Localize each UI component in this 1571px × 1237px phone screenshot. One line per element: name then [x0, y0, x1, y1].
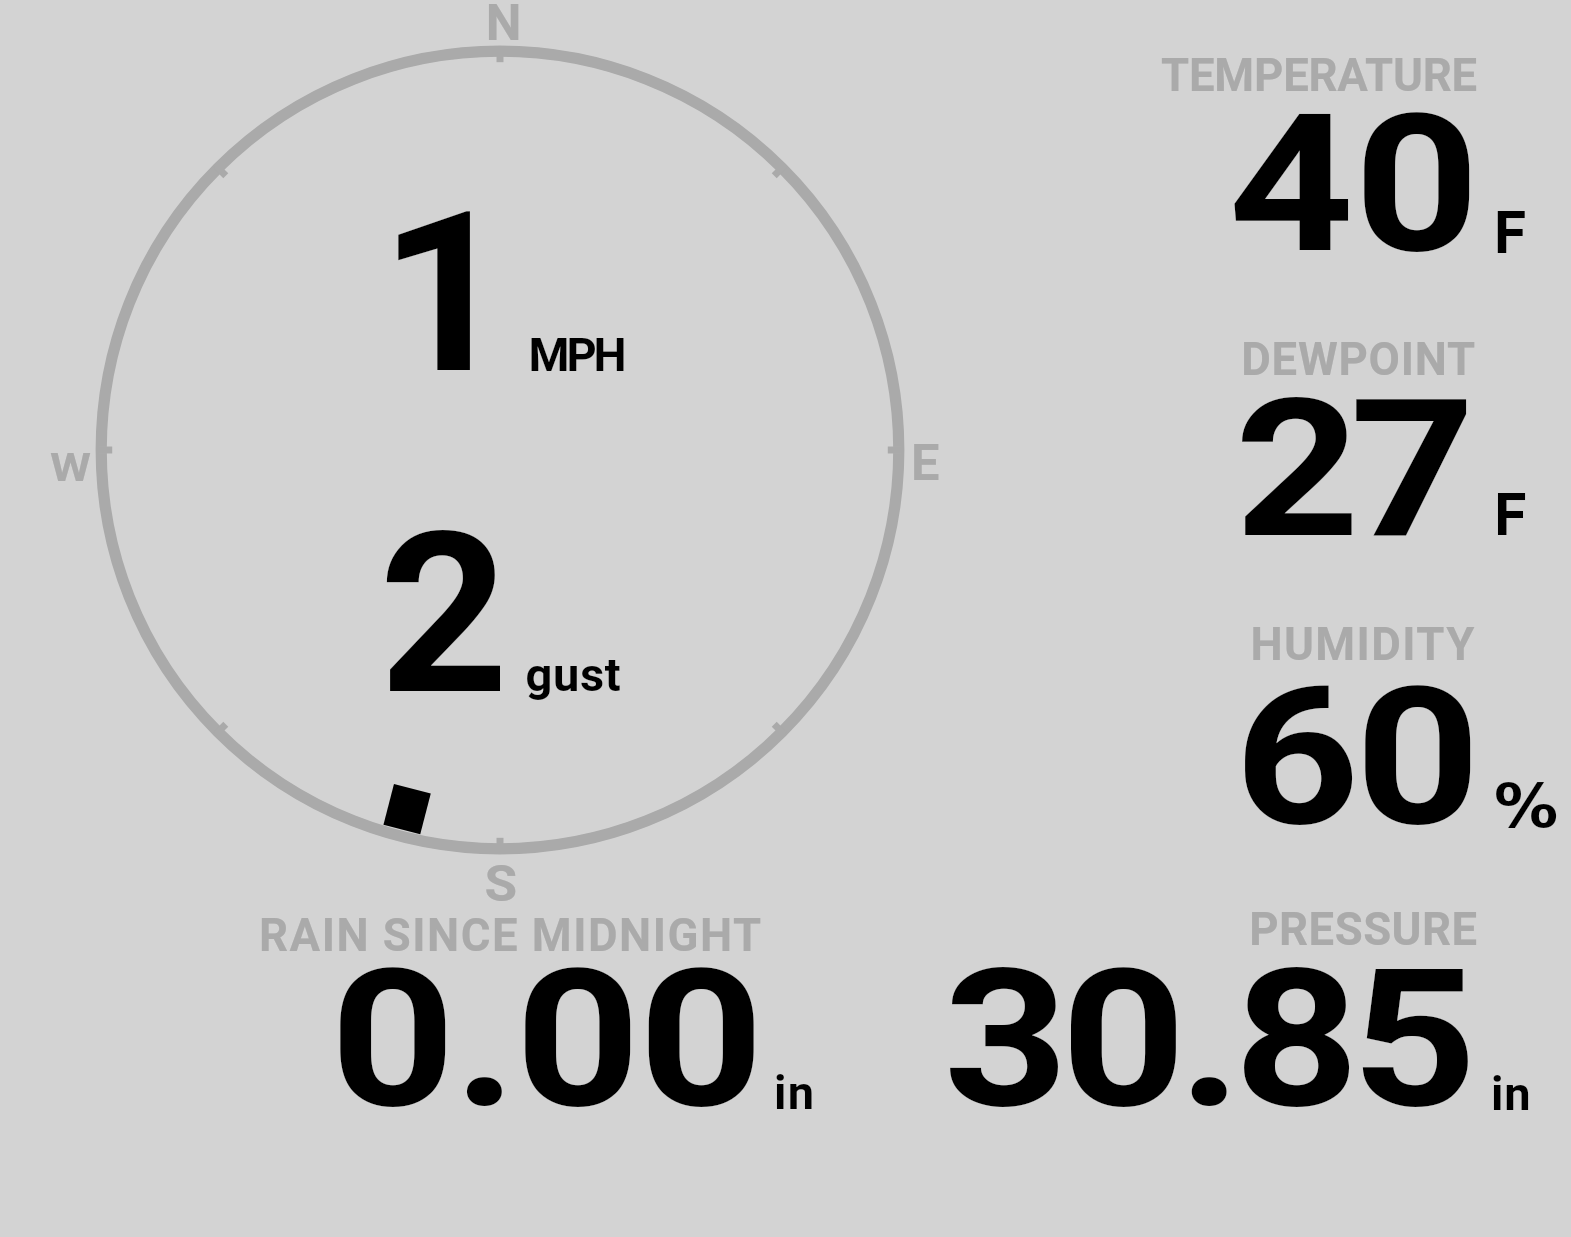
button[interactable]: Humidity 60 percent — [1130, 610, 1571, 835]
button[interactable]: Dewpoint 27 F — [1130, 325, 1571, 545]
button[interactable]: Wind speed 1 MPH, gust 2, direction sout… — [92, 42, 908, 858]
button[interactable]: Temperature 40 F — [1130, 40, 1571, 260]
button[interactable]: Rain since midnight 0.00 in — [240, 895, 820, 1120]
button[interactable]: Pressure 30.85 in — [900, 895, 1571, 1120]
